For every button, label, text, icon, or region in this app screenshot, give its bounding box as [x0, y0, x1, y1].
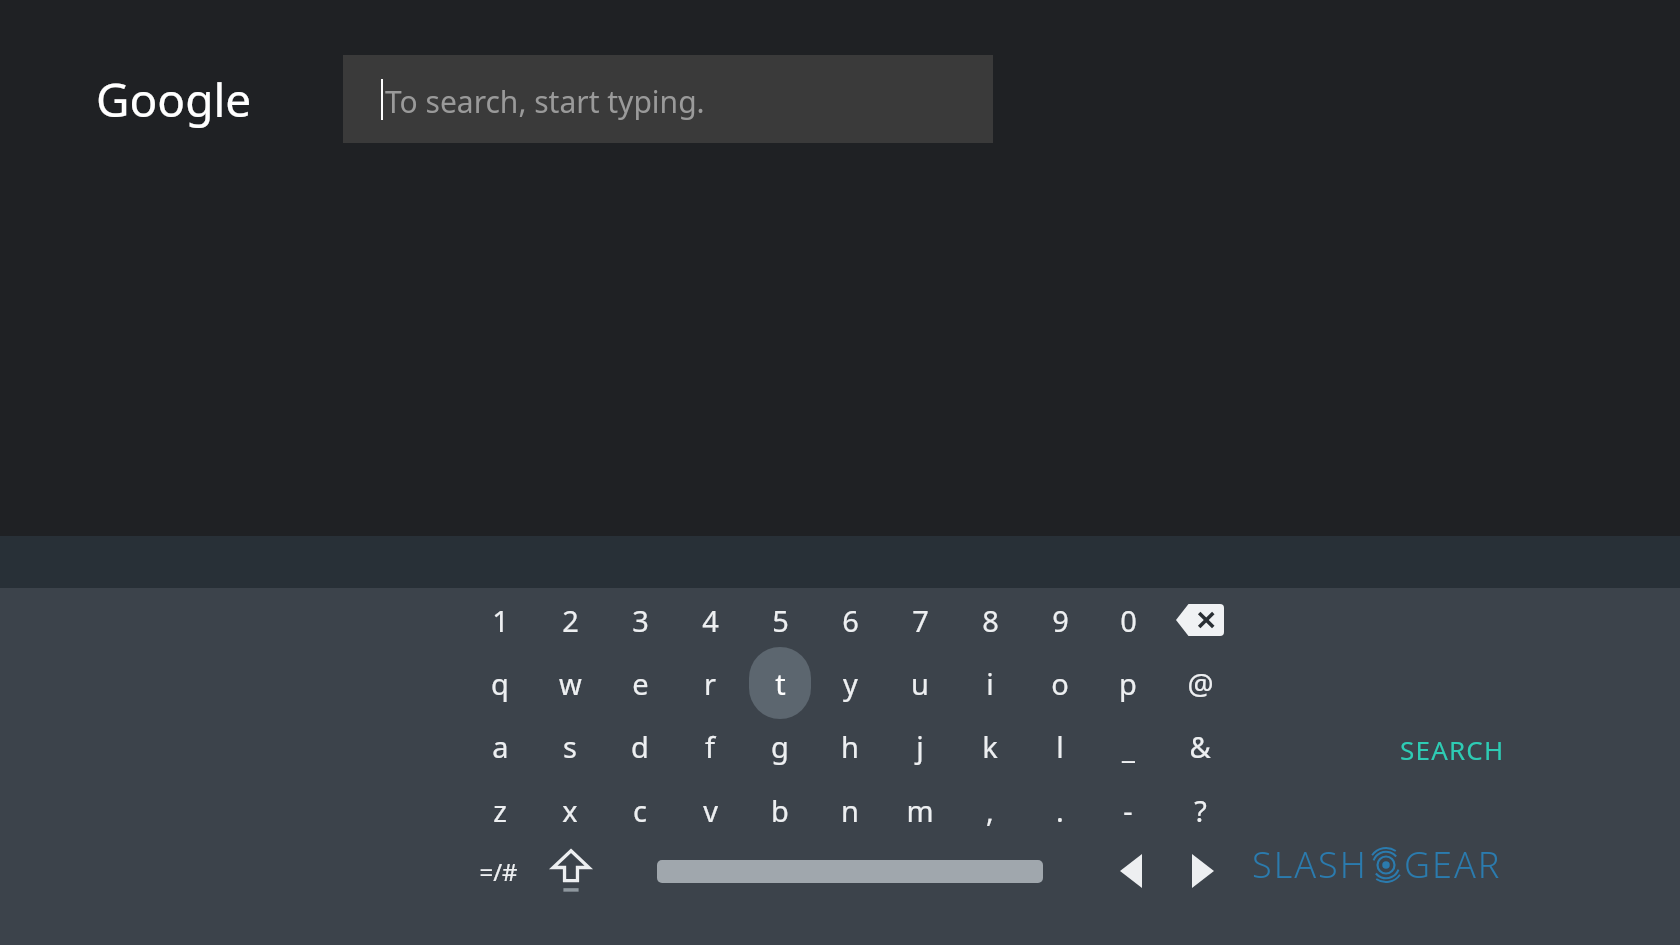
staticText: 0	[1120, 601, 1137, 640]
button[interactable]: 6	[818, 591, 882, 649]
staticText: @	[1187, 664, 1214, 703]
button[interactable]: l	[1028, 717, 1092, 775]
button[interactable]: v	[678, 781, 742, 839]
staticText: .	[1056, 791, 1064, 830]
button[interactable]: -	[1096, 781, 1160, 839]
staticText: 9	[1052, 601, 1069, 640]
staticText: f	[705, 727, 715, 766]
button[interactable]: s	[538, 717, 602, 775]
button[interactable]: b	[748, 781, 812, 839]
button[interactable]: o	[1028, 654, 1092, 712]
button[interactable]: g	[748, 717, 812, 775]
staticText: a	[492, 727, 509, 766]
staticText: d	[631, 727, 649, 766]
staticText: ?	[1194, 791, 1207, 830]
button[interactable]: u	[888, 654, 952, 712]
button[interactable]: 8	[958, 591, 1022, 649]
button[interactable]: d	[608, 717, 672, 775]
staticText: s	[563, 727, 577, 766]
button[interactable]: Google	[96, 68, 252, 131]
button[interactable]: 2	[538, 591, 602, 649]
button[interactable]: n	[818, 781, 882, 839]
button[interactable]: 5	[748, 591, 812, 649]
button[interactable]: k	[958, 717, 1022, 775]
staticText: w	[559, 664, 582, 703]
button[interactable]: y	[818, 654, 882, 712]
button[interactable]: .	[1028, 781, 1092, 839]
staticText: j	[916, 727, 924, 766]
staticText: t	[775, 664, 786, 703]
button[interactable]: Move cursor left	[1101, 842, 1161, 900]
staticText: GEAR	[1404, 840, 1502, 889]
staticText: 3	[632, 601, 649, 640]
staticText: =/#	[479, 855, 518, 888]
staticText: To search, start typing.	[385, 81, 705, 122]
button[interactable]: t	[748, 654, 812, 712]
staticText: p	[1119, 664, 1137, 703]
button[interactable]: x	[538, 781, 602, 839]
staticText: 5	[772, 601, 789, 640]
staticText: k	[982, 727, 998, 766]
staticText: l	[1056, 727, 1064, 766]
staticText: 6	[842, 601, 859, 640]
button[interactable]: ,	[958, 781, 1022, 839]
button[interactable]: @	[1168, 654, 1232, 712]
button[interactable]: 0	[1096, 591, 1160, 649]
button[interactable]: a	[468, 717, 532, 775]
staticText: y	[843, 664, 858, 703]
button[interactable]: z	[468, 781, 532, 839]
staticText: 2	[562, 601, 579, 640]
staticText: SLASH	[1252, 840, 1368, 889]
staticText: v	[703, 791, 718, 830]
staticText: _	[1122, 727, 1135, 766]
staticText: e	[632, 664, 649, 703]
button[interactable]: =/#	[466, 842, 530, 900]
button[interactable]: q	[468, 654, 532, 712]
button[interactable]: Backspace	[1168, 591, 1232, 649]
button[interactable]: p	[1096, 654, 1160, 712]
button[interactable]: i	[958, 654, 1022, 712]
button[interactable]: &	[1168, 717, 1232, 775]
button[interactable]: e	[608, 654, 672, 712]
button[interactable]: 4	[678, 591, 742, 649]
button[interactable]: c	[608, 781, 672, 839]
button[interactable]: w	[538, 654, 602, 712]
staticText: u	[911, 664, 929, 703]
staticText: 4	[702, 601, 719, 640]
button[interactable]: To search, start typing.	[343, 55, 993, 143]
button[interactable]: 9	[1028, 591, 1092, 649]
staticText: 1	[492, 601, 509, 640]
button[interactable]: 1	[468, 591, 532, 649]
button[interactable]: Space	[640, 845, 1060, 897]
staticText: 7	[912, 601, 929, 640]
staticText: Google	[96, 68, 252, 131]
staticText: b	[771, 791, 789, 830]
staticText: &	[1189, 727, 1211, 766]
button[interactable]: 3	[608, 591, 672, 649]
button[interactable]: m	[888, 781, 952, 839]
button[interactable]: 7	[888, 591, 952, 649]
button[interactable]: Shift	[539, 841, 603, 901]
staticText: -	[1123, 791, 1133, 830]
staticText: g	[771, 727, 789, 766]
button[interactable]: j	[888, 717, 952, 775]
staticText: o	[1051, 664, 1069, 703]
button[interactable]: SEARCH	[1392, 726, 1513, 773]
staticText: q	[491, 664, 509, 703]
button[interactable]: Move cursor right	[1173, 842, 1233, 900]
staticText: ,	[986, 791, 994, 830]
staticText: c	[633, 791, 647, 830]
staticText: i	[986, 664, 994, 703]
staticText: n	[841, 791, 859, 830]
button[interactable]: _	[1096, 717, 1160, 775]
staticText: 8	[982, 601, 999, 640]
staticText: x	[562, 791, 578, 830]
button[interactable]: ?	[1168, 781, 1232, 839]
staticText: h	[841, 727, 859, 766]
button[interactable]: r	[678, 654, 742, 712]
staticText: SEARCH	[1400, 732, 1505, 767]
button[interactable]: h	[818, 717, 882, 775]
staticText: z	[493, 791, 507, 830]
staticText: m	[906, 791, 934, 830]
button[interactable]: f	[678, 717, 742, 775]
